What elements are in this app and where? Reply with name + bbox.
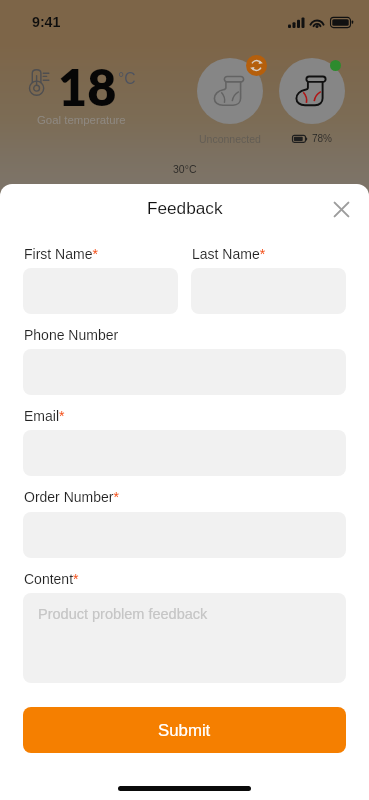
button[interactable]: Reconnect bbox=[246, 55, 267, 76]
staticText: First Name* bbox=[24, 246, 98, 262]
staticText: Goal temperature bbox=[37, 114, 126, 127]
staticText: °C bbox=[118, 70, 136, 88]
button[interactable]: Right sock bbox=[279, 58, 345, 124]
staticText: Product problem feedback bbox=[38, 606, 208, 622]
button[interactable]: Left sock bbox=[197, 58, 263, 124]
staticText: Phone Number bbox=[24, 327, 119, 343]
staticText: Last Name* bbox=[192, 246, 266, 262]
staticText: Email* bbox=[24, 408, 65, 424]
staticText: 18 bbox=[58, 56, 117, 116]
staticText: Feedback bbox=[147, 198, 223, 217]
staticText: 9:41 bbox=[32, 14, 61, 30]
button[interactable]: Product problem feedback bbox=[23, 593, 346, 683]
staticText: Order Number* bbox=[24, 489, 119, 505]
staticText: Content* bbox=[24, 571, 79, 587]
staticText: Submit bbox=[158, 721, 211, 740]
button[interactable]: Submit bbox=[23, 707, 346, 753]
staticText: 30°C bbox=[173, 163, 197, 175]
staticText: Unconnected bbox=[199, 133, 261, 145]
button[interactable]: Close bbox=[324, 192, 359, 227]
staticText: 78% bbox=[312, 133, 333, 144]
